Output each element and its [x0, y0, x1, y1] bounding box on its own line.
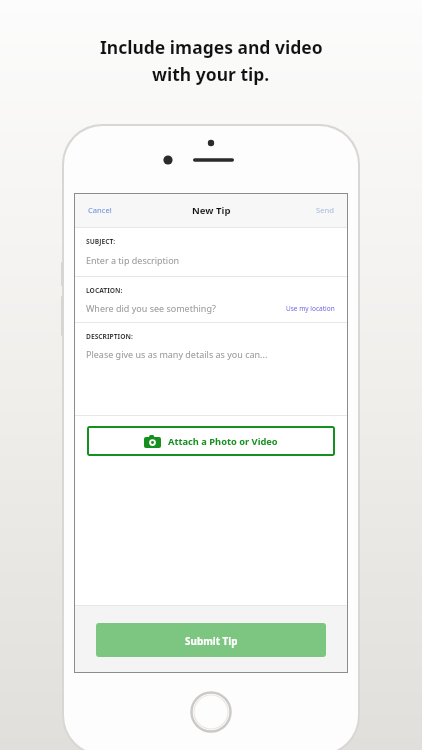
button[interactable]: Send: [310, 200, 340, 220]
staticText: New Tip: [192, 204, 231, 217]
button[interactable]: Submit Tip: [96, 623, 326, 657]
staticText: Where did you see something?: [86, 302, 216, 314]
staticText: Please give us as many details as you ca…: [86, 348, 268, 360]
staticText: Use my location: [286, 304, 335, 313]
button[interactable]: Cancel: [82, 200, 118, 220]
staticText: with your tip.: [152, 62, 270, 86]
other: Attach a photo or video: [144, 435, 161, 448]
button[interactable]: Attach a photo or video: [87, 426, 335, 456]
staticText: LOCATION:: [86, 286, 123, 295]
staticText: DESCRIPTION:: [86, 332, 133, 341]
staticText: Include images and video: [100, 35, 323, 59]
button[interactable]: LOCATION:: [74, 277, 348, 322]
button[interactable]: Use my location: [285, 303, 336, 314]
staticText: Send: [316, 205, 334, 215]
staticText: SUBJECT:: [86, 237, 116, 246]
staticText: Cancel: [88, 205, 112, 215]
button[interactable]: SUBJECT:: [74, 228, 348, 276]
button[interactable]: DESCRIPTION:: [74, 323, 348, 415]
staticText: Submit Tip: [185, 634, 238, 647]
staticText: Enter a tip description: [86, 254, 180, 266]
staticText: Attach a Photo or Video: [168, 435, 278, 448]
